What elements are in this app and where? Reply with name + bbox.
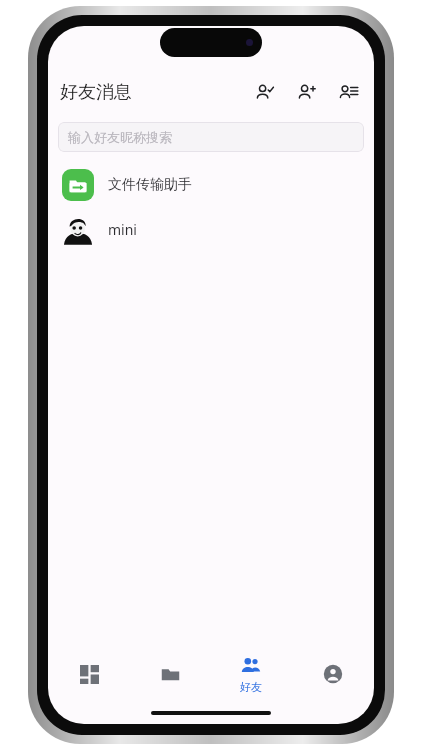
staticText: 好友消息: [60, 81, 132, 104]
staticText: 好友: [240, 680, 262, 694]
button[interactable]: 输入好友昵称搜索: [58, 122, 364, 152]
button[interactable]: Account: [292, 646, 374, 702]
button[interactable]: mini: [48, 207, 374, 252]
button[interactable]: 文件传输助手: [48, 162, 374, 207]
button[interactable]: Dashboard: [48, 646, 129, 702]
staticText: 文件传输助手: [108, 176, 192, 194]
button[interactable]: Friend requests: [248, 75, 282, 109]
staticText: 输入好友昵称搜索: [68, 129, 172, 145]
button[interactable]: Files: [129, 646, 210, 702]
staticText: mini: [108, 220, 137, 239]
button[interactable]: Add friend: [290, 75, 324, 109]
button[interactable]: Friend list: [332, 75, 366, 109]
button[interactable]: 好友: [210, 646, 292, 702]
